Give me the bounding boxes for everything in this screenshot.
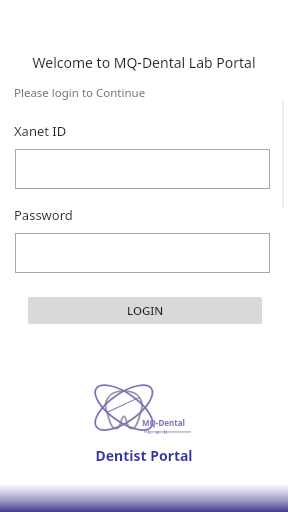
- button[interactable]: LOGIN: [28, 297, 262, 324]
- button[interactable]: [15, 149, 270, 189]
- button[interactable]: [15, 233, 270, 273]
- staticText: Dentist Portal: [0, 446, 288, 465]
- staticText: LOGIN: [127, 303, 164, 319]
- staticText: Welcome to MQ-Dental Lab Portal: [0, 53, 288, 72]
- staticText: Xanet ID: [14, 122, 67, 140]
- staticText: Password: [14, 206, 73, 224]
- staticText: Please login to Continue: [14, 85, 288, 101]
- staticText: L a b: [148, 428, 168, 436]
- staticText: MQ-Dental: [142, 417, 185, 428]
